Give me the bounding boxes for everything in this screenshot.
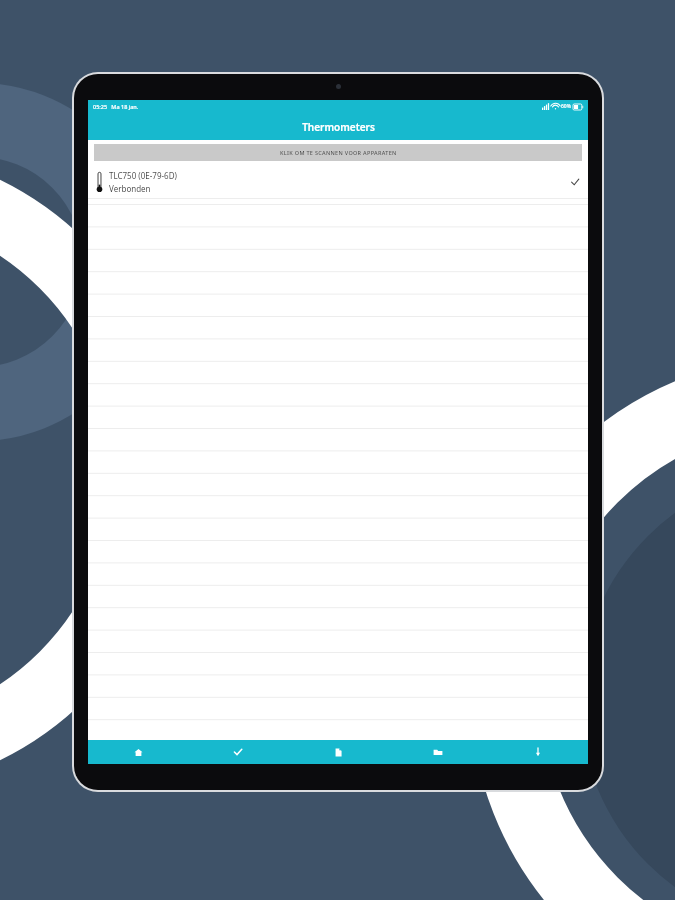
button[interactable]: Reports [288,740,388,764]
staticText: Verbonden [109,183,151,194]
button[interactable]: Connected devices [188,740,288,764]
staticText: TLC750 (0E-79-6D) [109,170,177,181]
button[interactable]: Home [88,740,188,764]
staticText: 05:25 Ma 18 jan. [93,103,139,110]
staticText: Thermometers [302,120,375,134]
button[interactable]: KLIK OM TE SCANNEN VOOR APPARATEN [94,144,582,161]
staticText: KLIK OM TE SCANNEN VOOR APPARATEN [280,149,397,156]
button[interactable]: Download [488,740,588,764]
button[interactable]: TLC750 (0E-79-6D) [88,165,588,199]
button[interactable]: Files [388,740,488,764]
staticText: 60% [561,103,571,110]
